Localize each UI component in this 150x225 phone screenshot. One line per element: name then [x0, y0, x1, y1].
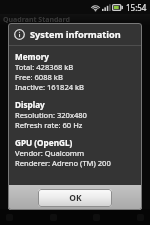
staticText: Renderer: Adreno (TM) 200 [15, 158, 111, 168]
staticText: Vendor: Qualcomm [15, 148, 85, 158]
staticText: OK [69, 192, 82, 204]
staticText: Quadrant Standard [3, 15, 70, 25]
staticText: Display [15, 99, 45, 110]
other: Signal strength [102, 4, 110, 11]
other: Wi-Fi [91, 4, 100, 12]
staticText: Refresh rate: 60 Hz [15, 120, 83, 130]
staticText: Configuration [44, 137, 107, 149]
staticText: Total: 428368 kB [15, 62, 74, 72]
staticText: 15:54 [126, 2, 147, 13]
staticText: Inactive: 161824 kB [15, 82, 85, 92]
button[interactable]: OK [38, 189, 112, 207]
staticText: Run full benchmark [31, 41, 120, 53]
staticText: Resolution: 320x480 [15, 110, 87, 120]
staticText: System information [30, 28, 121, 41]
staticText: Free: 6088 kB [15, 72, 63, 82]
other: Battery [112, 4, 123, 11]
staticText: GPU (OpenGL) [15, 137, 73, 148]
staticText: Memory [15, 51, 50, 62]
